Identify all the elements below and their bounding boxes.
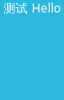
staticText: 测试 Hello	[3, 0, 60, 16]
